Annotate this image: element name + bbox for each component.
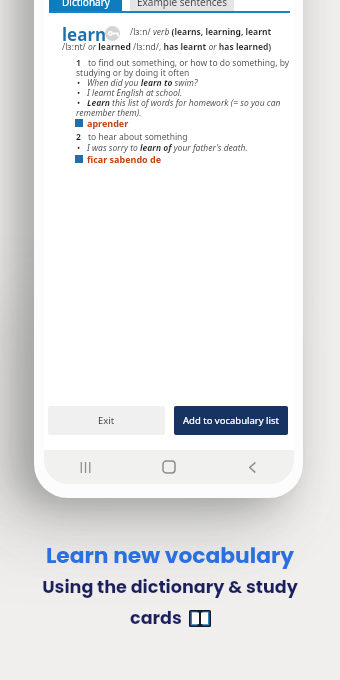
staticText: Exit xyxy=(98,414,115,427)
staticText: • xyxy=(77,97,81,109)
button[interactable]: Add to vocabulary list xyxy=(174,406,288,435)
button[interactable]: Recent apps xyxy=(44,450,127,484)
staticText: Learn this list of words for homework (=… xyxy=(87,97,281,109)
staticText: studying or by doing it often xyxy=(76,67,190,79)
staticText: to find out something, or how to do some… xyxy=(88,57,290,69)
staticText: cards xyxy=(130,606,182,631)
staticText: When did you learn to swim? xyxy=(87,77,198,89)
staticText: remember them). xyxy=(76,107,142,119)
button[interactable]: Home xyxy=(127,450,210,484)
button[interactable]: Back xyxy=(210,450,294,484)
staticText: Using the dictionary & study xyxy=(0,575,340,600)
staticText: /lɜːnt/ or learned /lɜːnd/, has learnt o… xyxy=(62,41,272,53)
staticText: Example sentences xyxy=(137,0,228,9)
staticText: • xyxy=(77,87,81,99)
staticText: /lɜːn/ verb (learns, learning, learnt xyxy=(130,26,272,38)
staticText: aprender xyxy=(87,117,129,129)
staticText: 1 xyxy=(76,57,81,69)
staticText: 2 xyxy=(76,131,81,143)
staticText: I learnt English at school. xyxy=(87,87,183,99)
staticText: • xyxy=(77,142,81,154)
staticText: Dictionary xyxy=(62,0,110,9)
staticText: • xyxy=(77,77,81,89)
staticText: learn xyxy=(62,23,107,46)
staticText: Learn new vocabulary xyxy=(0,540,340,571)
staticText: Add to vocabulary list xyxy=(183,414,279,427)
staticText: ficar sabendo de xyxy=(87,153,162,165)
button[interactable]: Example sentences xyxy=(130,0,234,11)
staticText: I was sorry to learn of your father's de… xyxy=(87,142,248,154)
button[interactable]: Exit xyxy=(48,406,165,435)
button[interactable]: Dictionary xyxy=(49,0,122,11)
staticText: to hear about something xyxy=(88,131,188,143)
